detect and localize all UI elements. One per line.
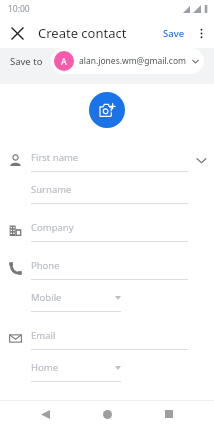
staticText: Phone xyxy=(31,259,60,272)
staticText: alan.jones.wm@gmail.com xyxy=(79,55,187,67)
button[interactable]: Save xyxy=(160,24,188,43)
button[interactable]: Recents xyxy=(152,400,186,428)
staticText: Home xyxy=(31,361,59,374)
button[interactable]: Company xyxy=(0,214,214,246)
button[interactable]: Mobile xyxy=(0,284,214,316)
button[interactable]: Email xyxy=(0,322,214,354)
button[interactable]: Close xyxy=(6,22,28,44)
staticText: A xyxy=(61,55,67,67)
staticText: 10:00 xyxy=(8,3,30,15)
staticText: Mobile xyxy=(31,291,62,304)
button[interactable]: A xyxy=(51,48,204,74)
button[interactable]: Phone xyxy=(0,252,214,284)
button[interactable]: Add photo xyxy=(89,92,125,128)
staticText: Email xyxy=(31,329,56,342)
button[interactable]: Expand name fields xyxy=(188,144,214,176)
staticText: First name xyxy=(31,151,79,164)
button[interactable]: Home xyxy=(90,400,124,428)
staticText: Surname xyxy=(31,183,72,196)
button[interactable]: More options xyxy=(191,23,211,43)
staticText: Save xyxy=(163,27,185,40)
button[interactable]: Home xyxy=(0,354,214,386)
button[interactable]: Back xyxy=(28,400,62,428)
staticText: Company xyxy=(31,221,74,234)
staticText: Save to xyxy=(10,55,43,68)
button[interactable]: First name xyxy=(0,144,214,176)
staticText: Create contact xyxy=(38,24,127,42)
button[interactable]: Surname xyxy=(0,176,214,208)
